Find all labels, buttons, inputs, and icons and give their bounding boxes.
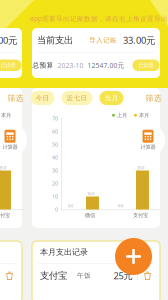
staticText: app需要导出记账数据，请在右上角设置导出。 — [30, 14, 168, 23]
staticText: 支付宝 — [40, 270, 67, 281]
staticText: 33.00元 — [123, 34, 155, 46]
staticText: 25.0 — [137, 165, 144, 170]
button[interactable]: 筛选 — [7, 93, 23, 103]
staticText: 当月 — [104, 94, 118, 102]
button[interactable]: 计算器 — [131, 123, 165, 157]
staticText: 支付宝 — [0, 212, 10, 219]
staticText: 50 — [52, 141, 58, 148]
staticText: 支付宝 — [133, 212, 148, 219]
staticText: 60 — [52, 128, 58, 135]
staticText: 本月 — [139, 112, 149, 119]
staticText: 2023-10 — [57, 61, 83, 70]
button[interactable]: 近七日 — [61, 91, 92, 105]
staticText: 当前支出 — [37, 34, 73, 46]
staticText: 33.00元 — [0, 34, 17, 46]
staticText: 午饭 — [77, 271, 91, 280]
button[interactable]: Add record — [115, 238, 152, 275]
staticText: 今日 — [35, 94, 49, 102]
button[interactable]: 筛选 — [145, 93, 161, 103]
staticText: 40 — [52, 154, 58, 161]
staticText: 总预算 — [32, 61, 53, 69]
staticText: 12547.00元 — [87, 61, 124, 70]
button[interactable]: 导入记账 — [89, 36, 117, 44]
button[interactable]: 计算器 — [0, 123, 27, 157]
staticText: 20 — [52, 180, 58, 187]
staticText: 近七日 — [66, 94, 87, 102]
staticText: 导入记账 — [89, 36, 117, 44]
staticText: 本月 — [1, 112, 11, 119]
staticText: 0.0 — [118, 203, 123, 208]
staticText: 10 — [52, 193, 58, 200]
staticText: 25元 — [113, 269, 132, 282]
button[interactable]: Delete — [143, 271, 152, 281]
staticText: 计算器 — [2, 144, 17, 150]
staticText: 本月支出记录 — [40, 247, 88, 257]
staticText: 0.0 — [68, 203, 73, 208]
staticText: 已设置 — [0, 62, 15, 69]
staticText: 筛选 — [145, 93, 161, 103]
button[interactable]: 今日 — [30, 91, 54, 105]
staticText: 0 — [55, 206, 58, 213]
button[interactable]: 已设置 — [132, 59, 159, 71]
staticText: 已设置 — [138, 62, 153, 69]
staticText: 筛选 — [7, 93, 23, 103]
staticText: 计算器 — [140, 144, 155, 150]
button[interactable]: 已设置 — [0, 59, 21, 71]
staticText: 25.0 — [0, 165, 6, 170]
staticText: 10.0 — [87, 191, 94, 196]
staticText: 上月 — [117, 112, 127, 119]
staticText: 30 — [52, 167, 58, 174]
staticText: 微信 — [85, 212, 95, 219]
button[interactable]: 当月 — [99, 91, 123, 105]
button[interactable]: Delete — [5, 271, 14, 281]
staticText: 70 — [52, 115, 58, 122]
